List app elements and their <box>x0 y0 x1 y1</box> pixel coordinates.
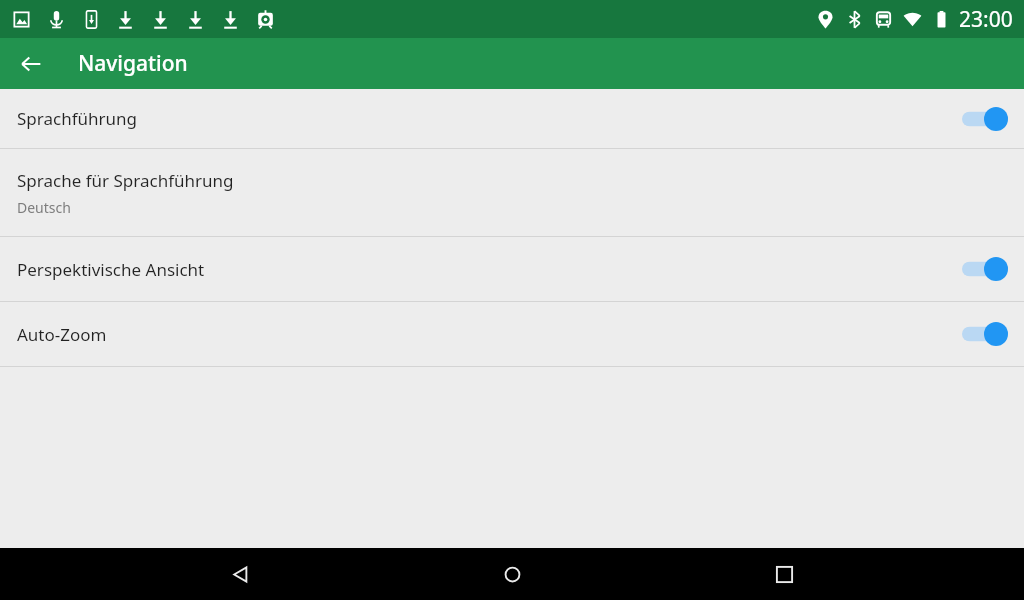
button[interactable] <box>960 253 1010 285</box>
staticText: Perspektivische Ansicht <box>17 258 960 281</box>
button[interactable]: Back <box>12 45 50 83</box>
staticText: Sprachführung <box>17 107 960 130</box>
button[interactable] <box>960 318 1010 350</box>
staticText: Sprache für Sprachführung <box>17 169 234 192</box>
button[interactable]: Perspektivische Ansicht <box>0 237 1024 301</box>
staticText: 23:00 <box>959 5 1013 34</box>
button[interactable]: Sprache für Sprachführung <box>0 149 1024 236</box>
staticText: Navigation <box>78 49 188 78</box>
button[interactable]: Home <box>480 548 544 600</box>
button[interactable]: Auto-Zoom <box>0 302 1024 366</box>
staticText: Deutsch <box>17 198 71 217</box>
button[interactable]: Back <box>208 548 272 600</box>
button[interactable]: Recents <box>752 548 816 600</box>
staticText: Auto-Zoom <box>17 323 960 346</box>
button[interactable]: Sprachführung <box>0 89 1024 148</box>
button[interactable] <box>960 103 1010 135</box>
